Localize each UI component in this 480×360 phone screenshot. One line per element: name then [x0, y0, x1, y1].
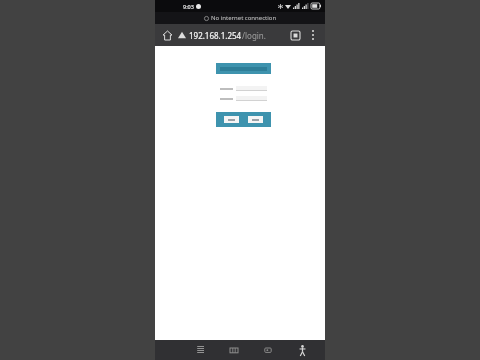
button[interactable]: 192.168.1.254: [178, 26, 287, 44]
button[interactable]: [236, 96, 267, 101]
button[interactable]: Recents: [183, 340, 217, 360]
button[interactable]: Accessibility: [285, 340, 319, 360]
button[interactable]: [236, 86, 267, 91]
staticText: /login.: [242, 30, 266, 41]
staticText: 192.168.1.254: [189, 30, 242, 41]
button[interactable]: Submit: [224, 116, 239, 123]
staticText: No internet connection: [211, 14, 277, 22]
button[interactable]: Back: [251, 340, 285, 360]
button[interactable]: More options: [305, 27, 321, 43]
button[interactable]: Submit: [248, 116, 263, 123]
button[interactable]: Home: [159, 27, 175, 43]
staticText: 9:03: [183, 3, 194, 10]
button[interactable]: Home: [217, 340, 251, 360]
button[interactable]: Tabs: [287, 27, 303, 43]
